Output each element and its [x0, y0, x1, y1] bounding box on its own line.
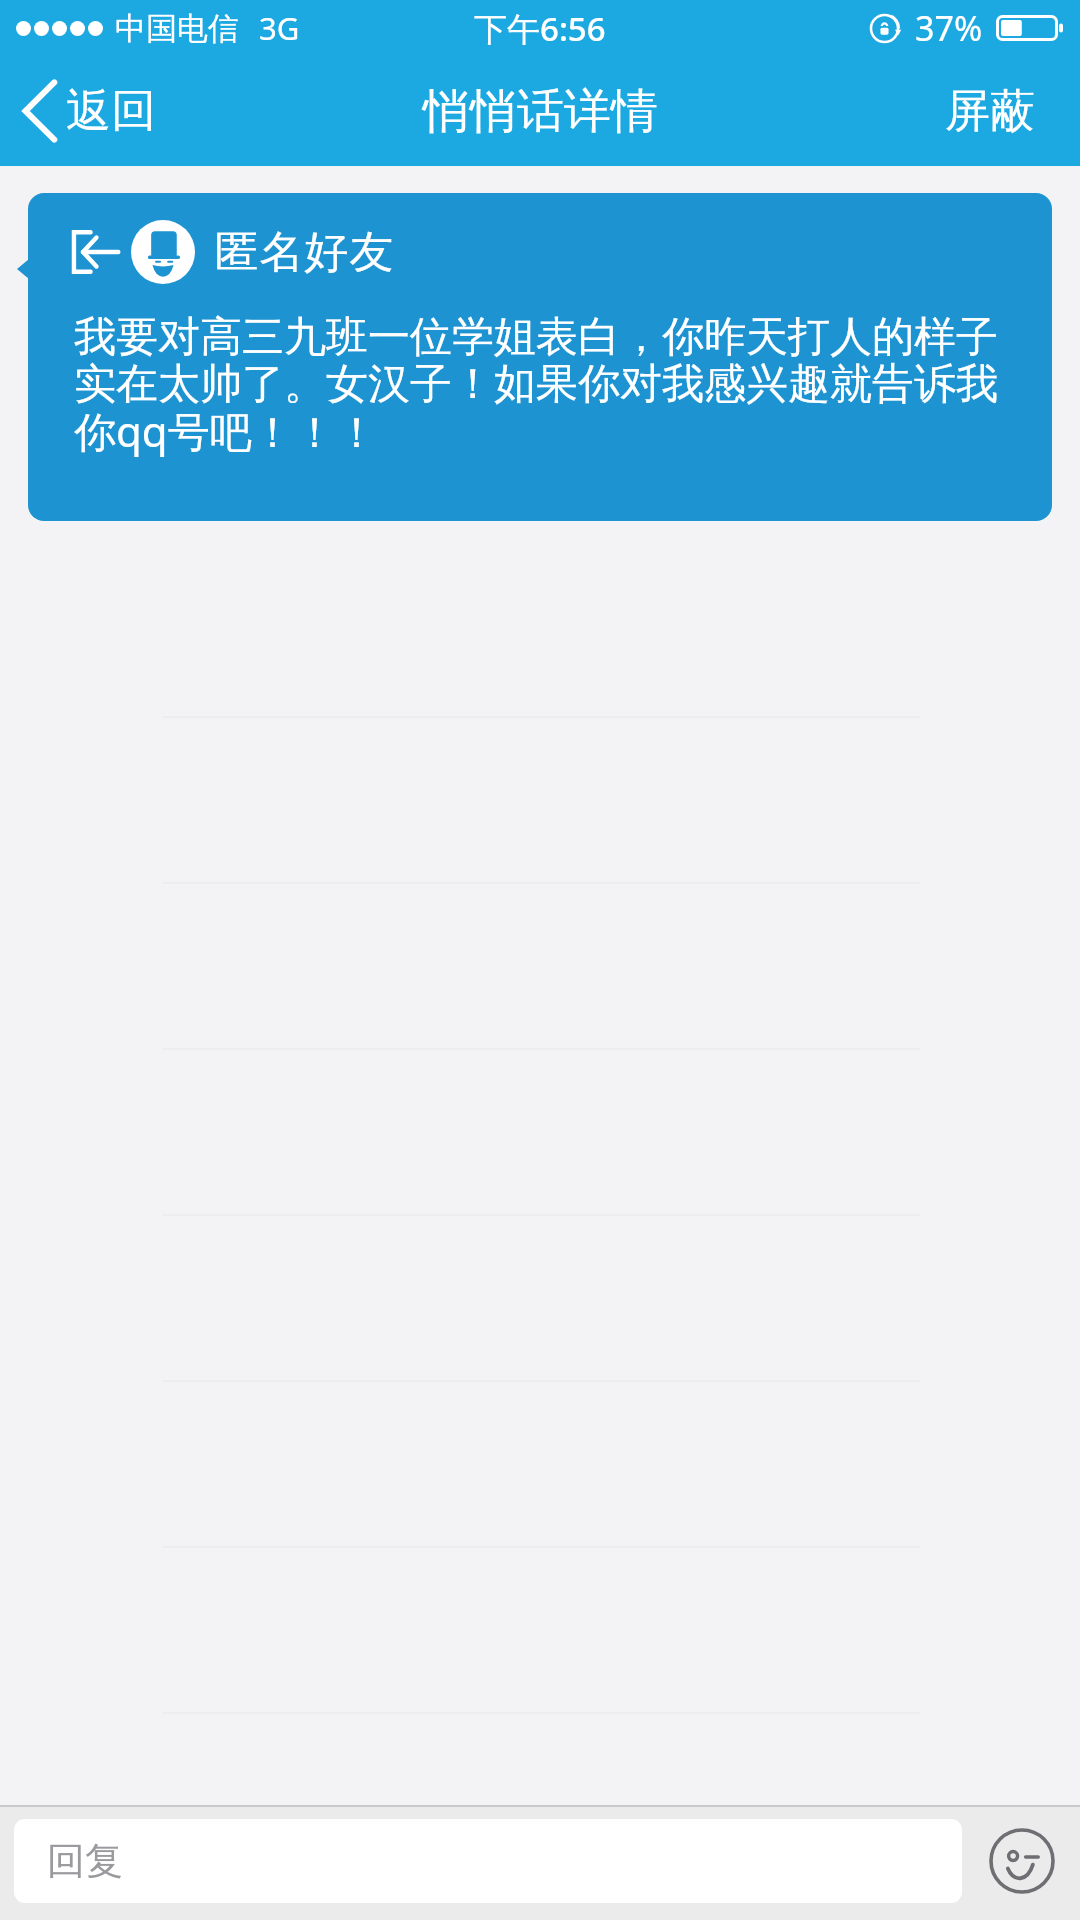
staticText: 返回: [66, 83, 156, 140]
button[interactable]: 回复: [14, 1819, 962, 1903]
button[interactable]: 匿名好友: [28, 193, 1052, 521]
staticText: 37%: [915, 5, 983, 51]
staticText: 屏蔽: [945, 83, 1035, 140]
staticText: 匿名好友: [214, 225, 394, 280]
button[interactable]: 屏蔽: [915, 69, 1080, 154]
staticText: 回复: [47, 1837, 123, 1885]
staticText: 中国电信: [115, 9, 239, 48]
staticText: 悄悄话详情: [423, 82, 658, 141]
button[interactable]: Emoji: [980, 1819, 1064, 1903]
staticText: 我要对高三九班一位学姐表白，你昨天打人的样子 实在太帅了。女汉子！如果你对我感兴…: [74, 311, 998, 459]
button[interactable]: 返回: [0, 66, 180, 156]
staticText: 3G: [259, 7, 300, 49]
staticText: 下午6:56: [474, 6, 606, 51]
